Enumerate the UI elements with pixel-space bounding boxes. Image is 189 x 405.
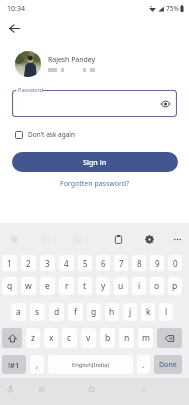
staticText: k <box>146 306 151 318</box>
button[interactable]: s <box>30 303 45 321</box>
button[interactable]: r <box>59 277 74 295</box>
button[interactable]: Backspace <box>157 328 182 348</box>
button[interactable]: f <box>68 303 83 321</box>
button[interactable]: e <box>40 277 55 295</box>
button[interactable]: 1 <box>2 255 17 271</box>
staticText: 8 <box>137 258 142 269</box>
button[interactable]: 5 <box>78 255 92 271</box>
staticText: r <box>65 280 69 292</box>
button[interactable]: i <box>132 277 146 295</box>
button[interactable]: Home <box>80 378 102 400</box>
button[interactable]: Forgotten password? <box>54 177 136 191</box>
staticText: 0 <box>173 258 178 269</box>
button[interactable]: 6 <box>96 255 110 271</box>
staticText: Rajesh Pandey <box>48 55 95 64</box>
button[interactable]: Settings <box>140 230 158 248</box>
staticText: n <box>124 332 130 344</box>
staticText: d <box>54 306 60 318</box>
staticText: Password <box>18 86 44 94</box>
button[interactable]: l <box>159 303 173 321</box>
staticText: b <box>105 332 111 344</box>
button[interactable]: m <box>138 328 153 348</box>
button[interactable]: 8 <box>132 255 146 271</box>
staticText: q <box>7 280 13 292</box>
staticText: l <box>165 306 168 318</box>
button[interactable]: h <box>105 303 119 321</box>
button[interactable]: v <box>81 328 96 348</box>
button[interactable]: w <box>21 277 36 295</box>
button[interactable]: English(India) <box>48 355 133 374</box>
button[interactable]: Don't ask again <box>15 129 189 140</box>
button[interactable]: n <box>119 328 134 348</box>
button[interactable]: t <box>78 277 92 295</box>
staticText: 7 <box>119 258 124 269</box>
button[interactable]: p <box>168 277 182 295</box>
button[interactable]: Sign in <box>12 152 178 172</box>
button[interactable]: . <box>137 355 150 374</box>
staticText: English(India) <box>72 361 110 369</box>
button[interactable]: x <box>44 328 58 348</box>
staticText: f <box>74 306 77 318</box>
button[interactable]: u <box>114 277 128 295</box>
staticText: m <box>142 332 150 344</box>
staticText: w <box>25 280 32 292</box>
staticText: Forgotten password? <box>60 179 130 189</box>
button[interactable]: Shift <box>2 328 22 348</box>
button[interactable]: j <box>123 303 137 321</box>
button[interactable]: d <box>49 303 64 321</box>
staticText: 3 <box>45 258 50 269</box>
button[interactable]: Done <box>154 355 182 374</box>
staticText: !#1 <box>8 360 20 370</box>
staticText: Don't ask again <box>28 130 76 139</box>
button[interactable]: Voice input <box>0 378 21 400</box>
button[interactable]: c <box>62 328 77 348</box>
staticText: Sign in <box>83 157 107 167</box>
staticText: , <box>36 359 39 370</box>
button[interactable]: q <box>2 277 17 295</box>
button[interactable]: 2 <box>21 255 36 271</box>
button[interactable]: 9 <box>150 255 164 271</box>
staticText: a <box>16 306 21 318</box>
staticText: z <box>31 332 35 344</box>
button[interactable]: k <box>141 303 155 321</box>
staticText: p <box>172 280 178 292</box>
button[interactable]: Recent apps <box>30 378 52 400</box>
staticText: e <box>45 280 50 292</box>
button[interactable]: , <box>30 355 44 374</box>
button[interactable]: Show password <box>157 95 174 112</box>
button[interactable]: y <box>96 277 110 295</box>
staticText: 2 <box>26 258 31 269</box>
staticText: 4 <box>64 258 69 269</box>
staticText: c <box>67 332 72 344</box>
staticText: s <box>35 306 40 318</box>
button[interactable]: a <box>11 303 26 321</box>
button[interactable]: o <box>150 277 164 295</box>
staticText: 75% <box>166 4 179 13</box>
button[interactable]: 3 <box>40 255 55 271</box>
button[interactable]: z <box>26 328 40 348</box>
button[interactable]: !#1 <box>2 355 26 374</box>
staticText: 6 <box>101 258 106 269</box>
staticText: 5 <box>83 258 88 269</box>
staticText: t <box>83 280 87 292</box>
button[interactable]: 0 <box>168 255 182 271</box>
button[interactable]: Clipboard <box>109 230 127 248</box>
button[interactable]: b <box>100 328 115 348</box>
staticText: 10:34 <box>7 4 25 14</box>
staticText: 9 <box>155 258 160 269</box>
staticText: u <box>118 280 124 292</box>
button[interactable]: Keyboard tool <box>5 230 23 248</box>
button[interactable]: Back <box>5 19 24 38</box>
button[interactable]: 4 <box>59 255 74 271</box>
staticText: v <box>86 332 91 344</box>
staticText: 1 <box>7 258 12 269</box>
staticText: j <box>129 306 132 318</box>
staticText: o <box>154 280 160 292</box>
button[interactable]: More options <box>168 230 186 248</box>
button[interactable]: g <box>87 303 101 321</box>
button[interactable]: 7 <box>114 255 128 271</box>
staticText: Done <box>159 360 177 370</box>
